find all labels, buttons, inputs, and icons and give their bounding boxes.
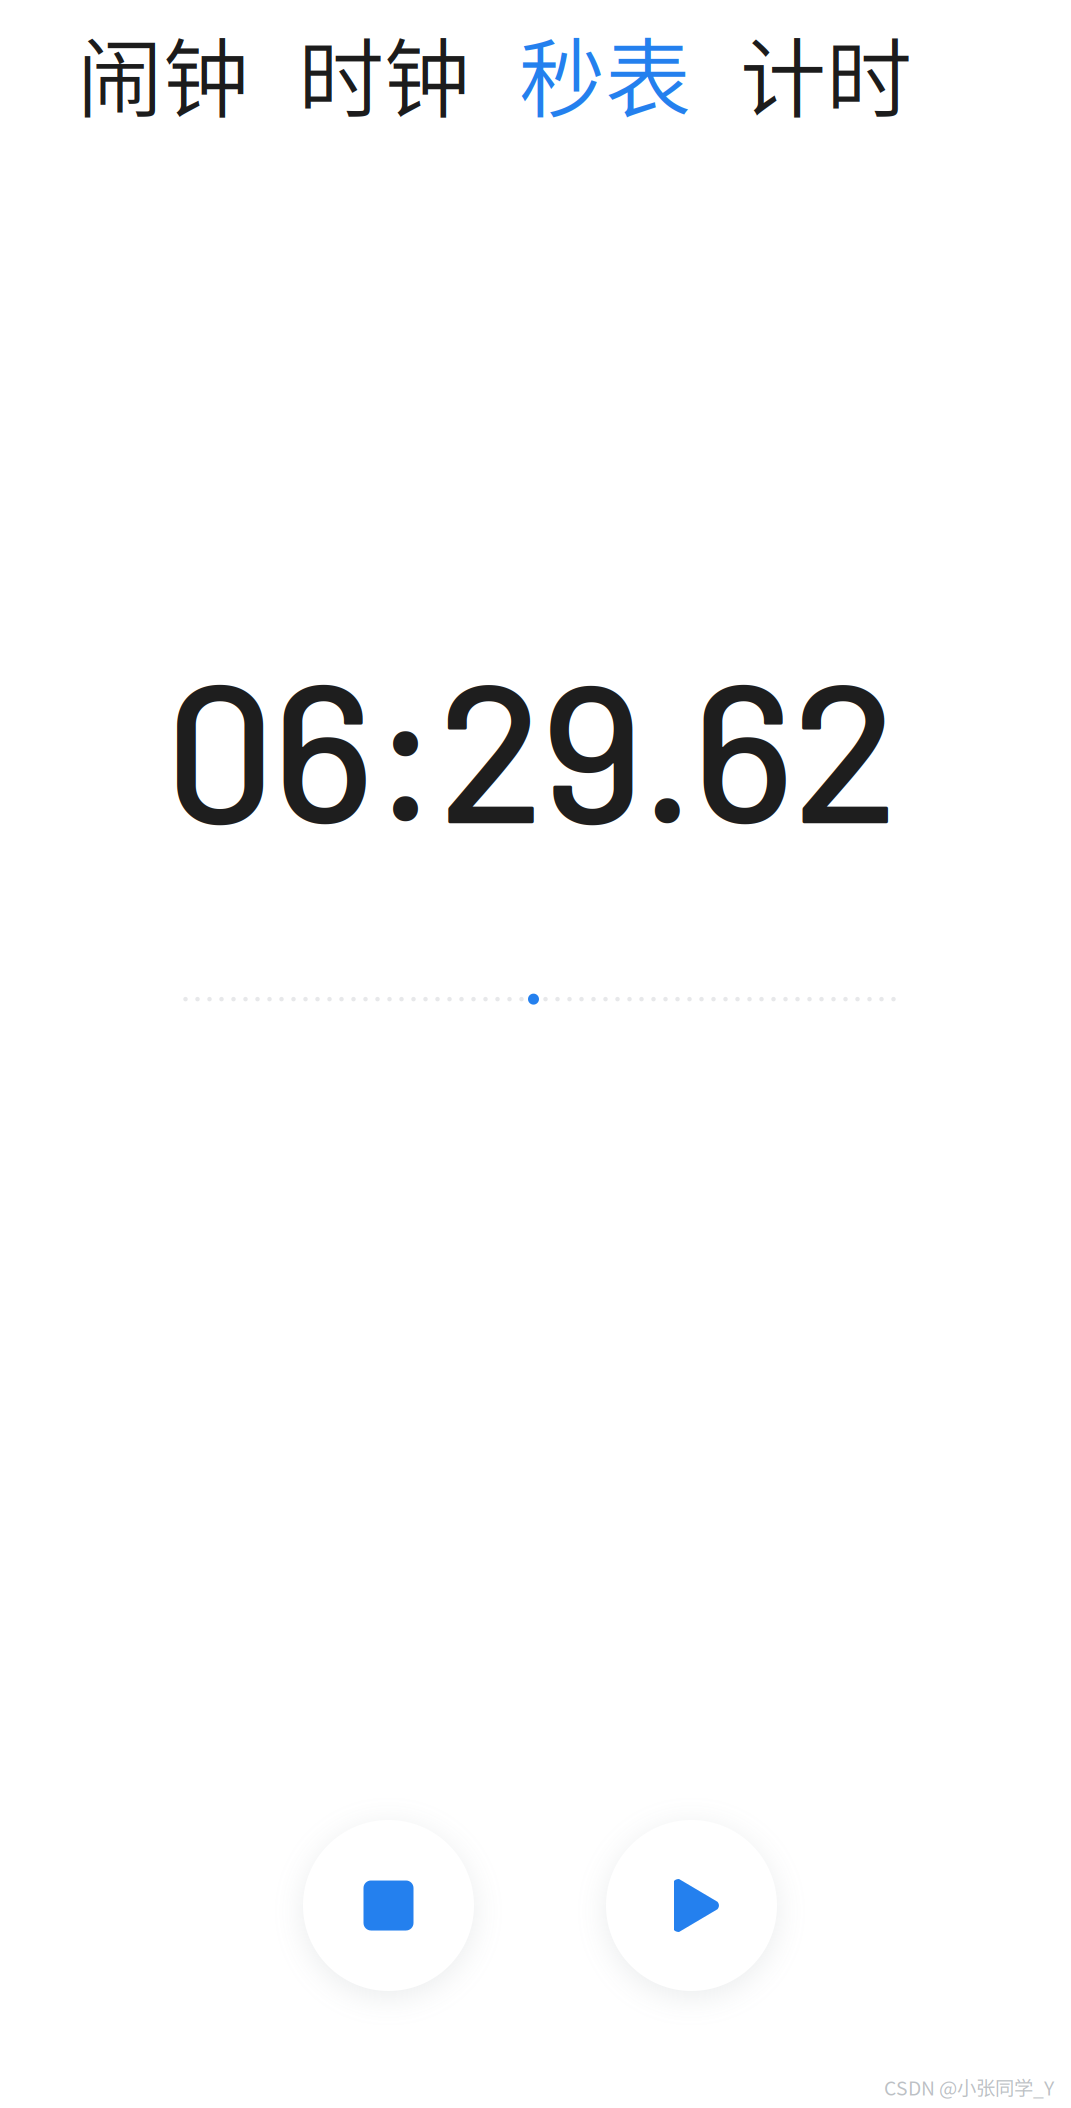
- button[interactable]: 计时: [740, 11, 912, 135]
- staticText: 06:29.62: [165, 628, 898, 862]
- button[interactable]: 闹钟: [77, 11, 249, 135]
- staticText: CSDN @小张同学_Y: [884, 2073, 1054, 2101]
- staticText: 计时: [740, 11, 912, 135]
- staticText: 秒表: [519, 11, 691, 135]
- button[interactable]: Stop: [303, 1820, 474, 1991]
- staticText: 闹钟: [77, 11, 249, 135]
- button[interactable]: Start: [606, 1820, 777, 1991]
- staticText: 时钟: [298, 11, 470, 135]
- button[interactable]: 时钟: [298, 11, 470, 135]
- button[interactable]: 秒表: [519, 11, 691, 135]
